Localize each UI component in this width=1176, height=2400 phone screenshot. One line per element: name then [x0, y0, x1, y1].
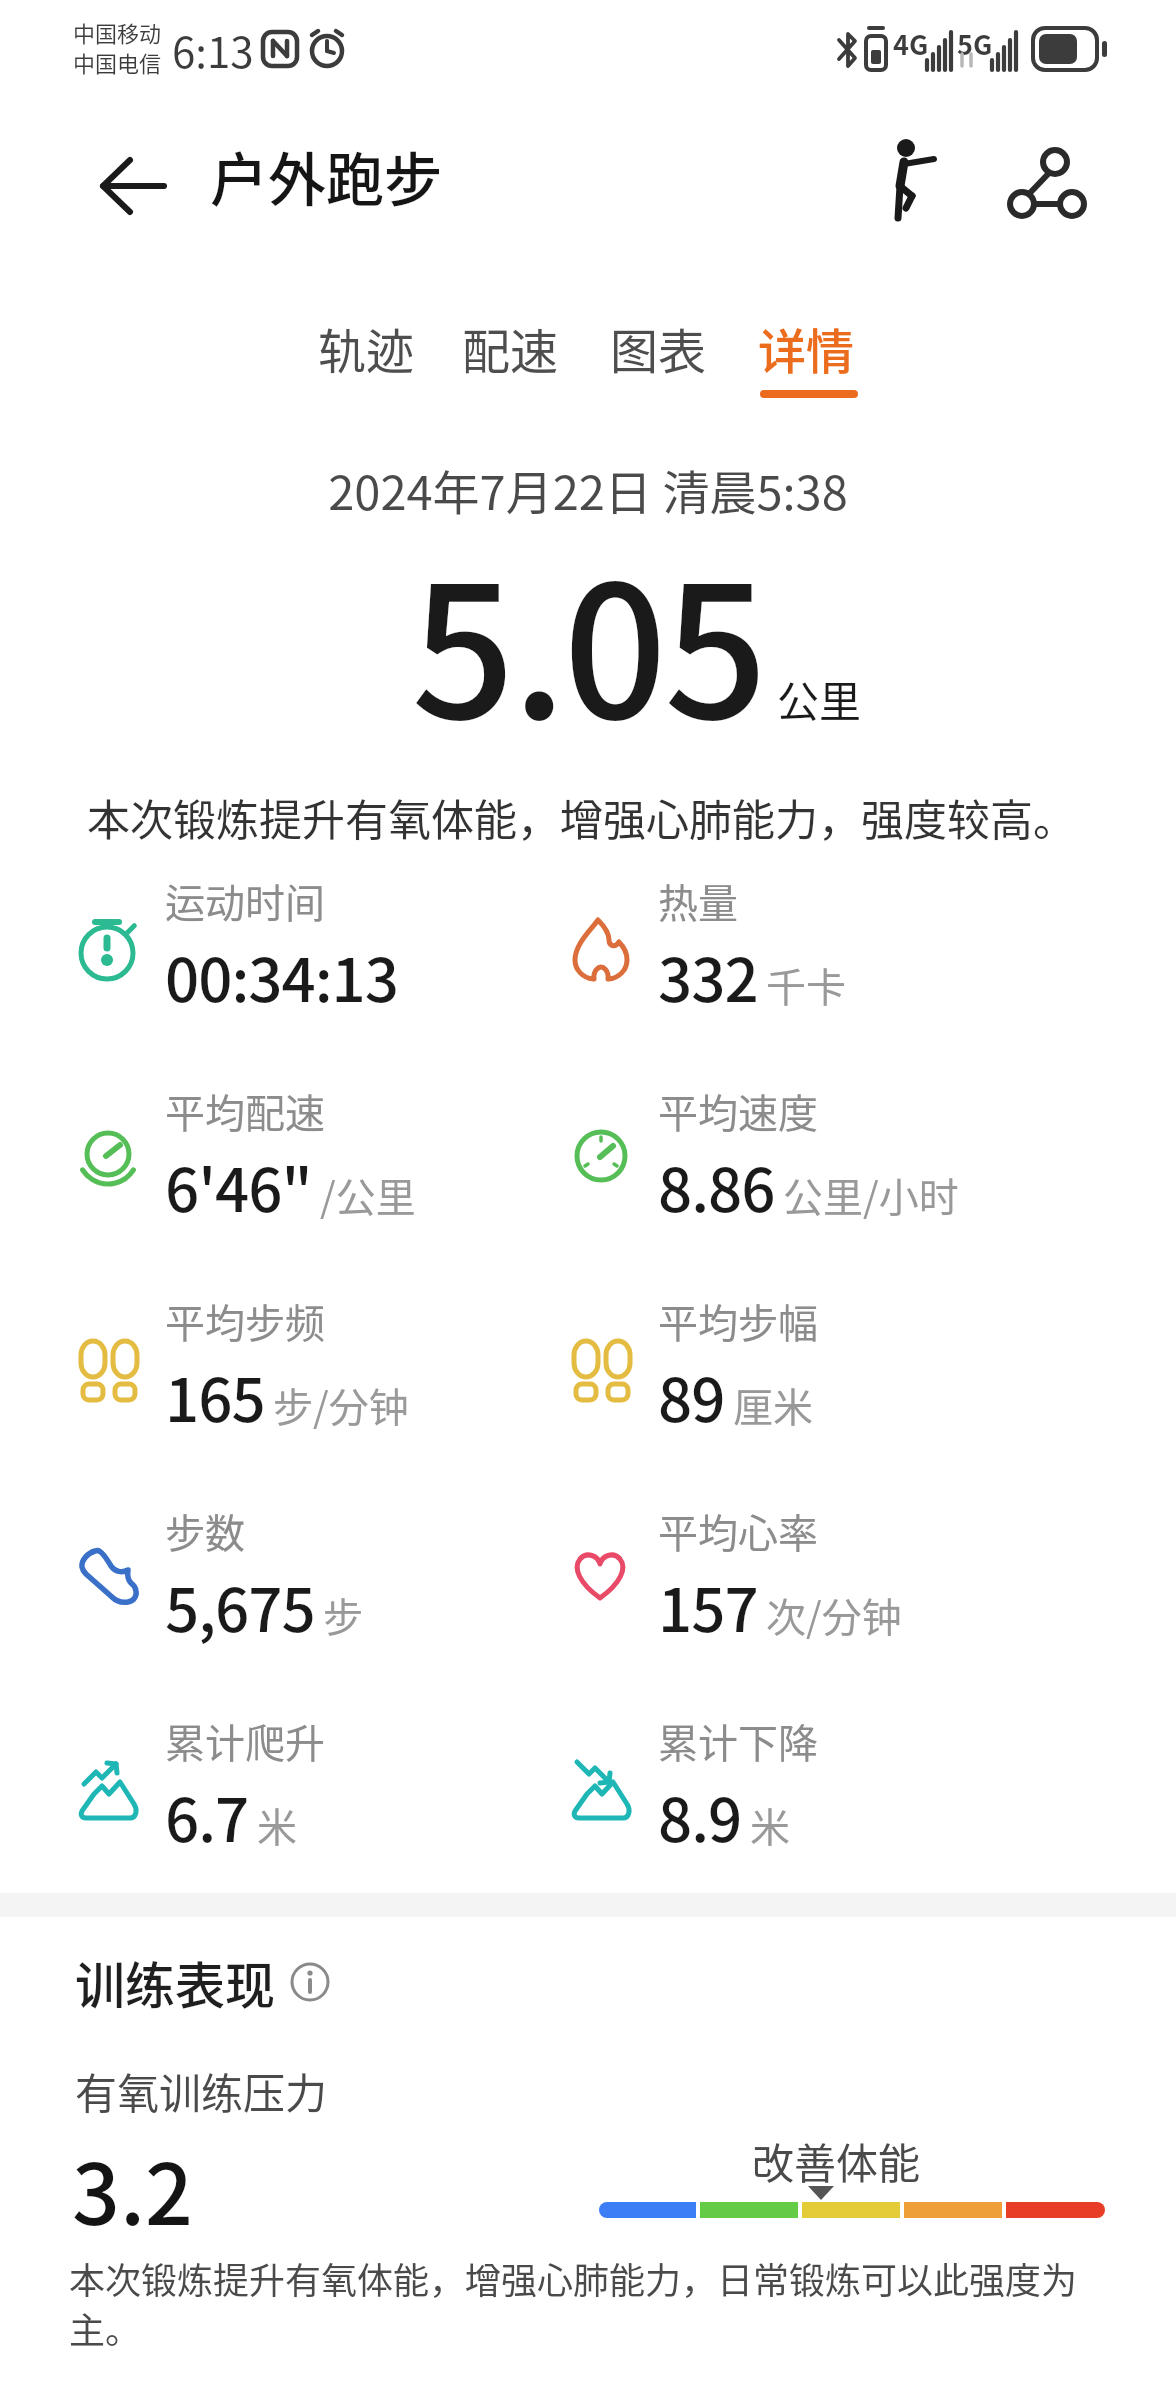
staticText: 6:13 — [172, 19, 254, 80]
staticText: 配速 — [462, 313, 559, 383]
staticText: 平均配速 — [165, 1082, 325, 1140]
staticText: 6'46" — [165, 1142, 312, 1229]
staticText: 5,675 — [165, 1562, 315, 1649]
button[interactable] — [85, 140, 181, 236]
staticText: 公里/小时 — [783, 1166, 959, 1224]
button[interactable] — [995, 135, 1091, 231]
staticText: 千卡 — [766, 956, 846, 1014]
staticText: 332 — [658, 932, 758, 1019]
staticText: 3.2 — [72, 2128, 193, 2250]
staticText: 户外跑步 — [210, 134, 443, 218]
staticText: 训练表现 — [75, 1946, 275, 2018]
staticText: 厘米 — [733, 1376, 813, 1434]
button[interactable]: 轨迹 — [318, 313, 420, 389]
staticText: 米 — [257, 1796, 297, 1854]
staticText: 轨迹 — [318, 313, 415, 383]
staticText: 平均速度 — [658, 1082, 818, 1140]
button[interactable] — [289, 1961, 331, 2003]
staticText: 4G — [893, 24, 929, 63]
button[interactable]: 配速 — [462, 313, 564, 389]
staticText: 平均心率 — [658, 1502, 818, 1560]
staticText: 有氧训练压力 — [75, 2060, 328, 2121]
staticText: 米 — [750, 1796, 790, 1854]
staticText: 本次锻炼提升有氧体能，增强心肺能力，日常锻炼可以此强度为主。 — [69, 2252, 1089, 2354]
staticText: 165 — [165, 1352, 265, 1439]
staticText: 中国移动 — [73, 16, 162, 48]
staticText: 图表 — [610, 313, 707, 383]
staticText: /公里 — [320, 1166, 416, 1224]
button[interactable]: 详情 — [758, 313, 860, 389]
button[interactable] — [860, 128, 956, 224]
staticText: 热量 — [658, 872, 738, 930]
staticText: 详情 — [758, 313, 855, 383]
button[interactable]: 图表 — [610, 313, 712, 389]
staticText: 2024年7月22日 清晨5:38 — [0, 455, 1176, 523]
staticText: 5G — [957, 24, 993, 63]
staticText: 平均步幅 — [658, 1292, 818, 1350]
staticText: 平均步频 — [165, 1292, 325, 1350]
staticText: 改善体能 — [752, 2130, 921, 2191]
staticText: 5.05 — [0, 507, 1176, 771]
staticText: 累计下降 — [658, 1712, 818, 1770]
staticText: 157 — [658, 1562, 758, 1649]
staticText: 89 — [658, 1352, 725, 1439]
staticText: 00:34:13 — [165, 932, 398, 1019]
staticText: 8.86 — [658, 1142, 775, 1229]
staticText: 8.9 — [658, 1772, 742, 1859]
staticText: 6.7 — [165, 1772, 249, 1859]
staticText: 步 — [323, 1586, 363, 1644]
staticText: 步/分钟 — [273, 1376, 409, 1434]
staticText: 步数 — [165, 1502, 245, 1560]
staticText: 公里 — [777, 668, 862, 729]
staticText: 本次锻炼提升有氧体能，增强心肺能力，强度较高。 — [87, 786, 1076, 848]
staticText: 中国电信 — [73, 46, 162, 78]
staticText: 运动时间 — [165, 872, 325, 930]
staticText: 次/分钟 — [766, 1586, 902, 1644]
staticText: 累计爬升 — [165, 1712, 325, 1770]
